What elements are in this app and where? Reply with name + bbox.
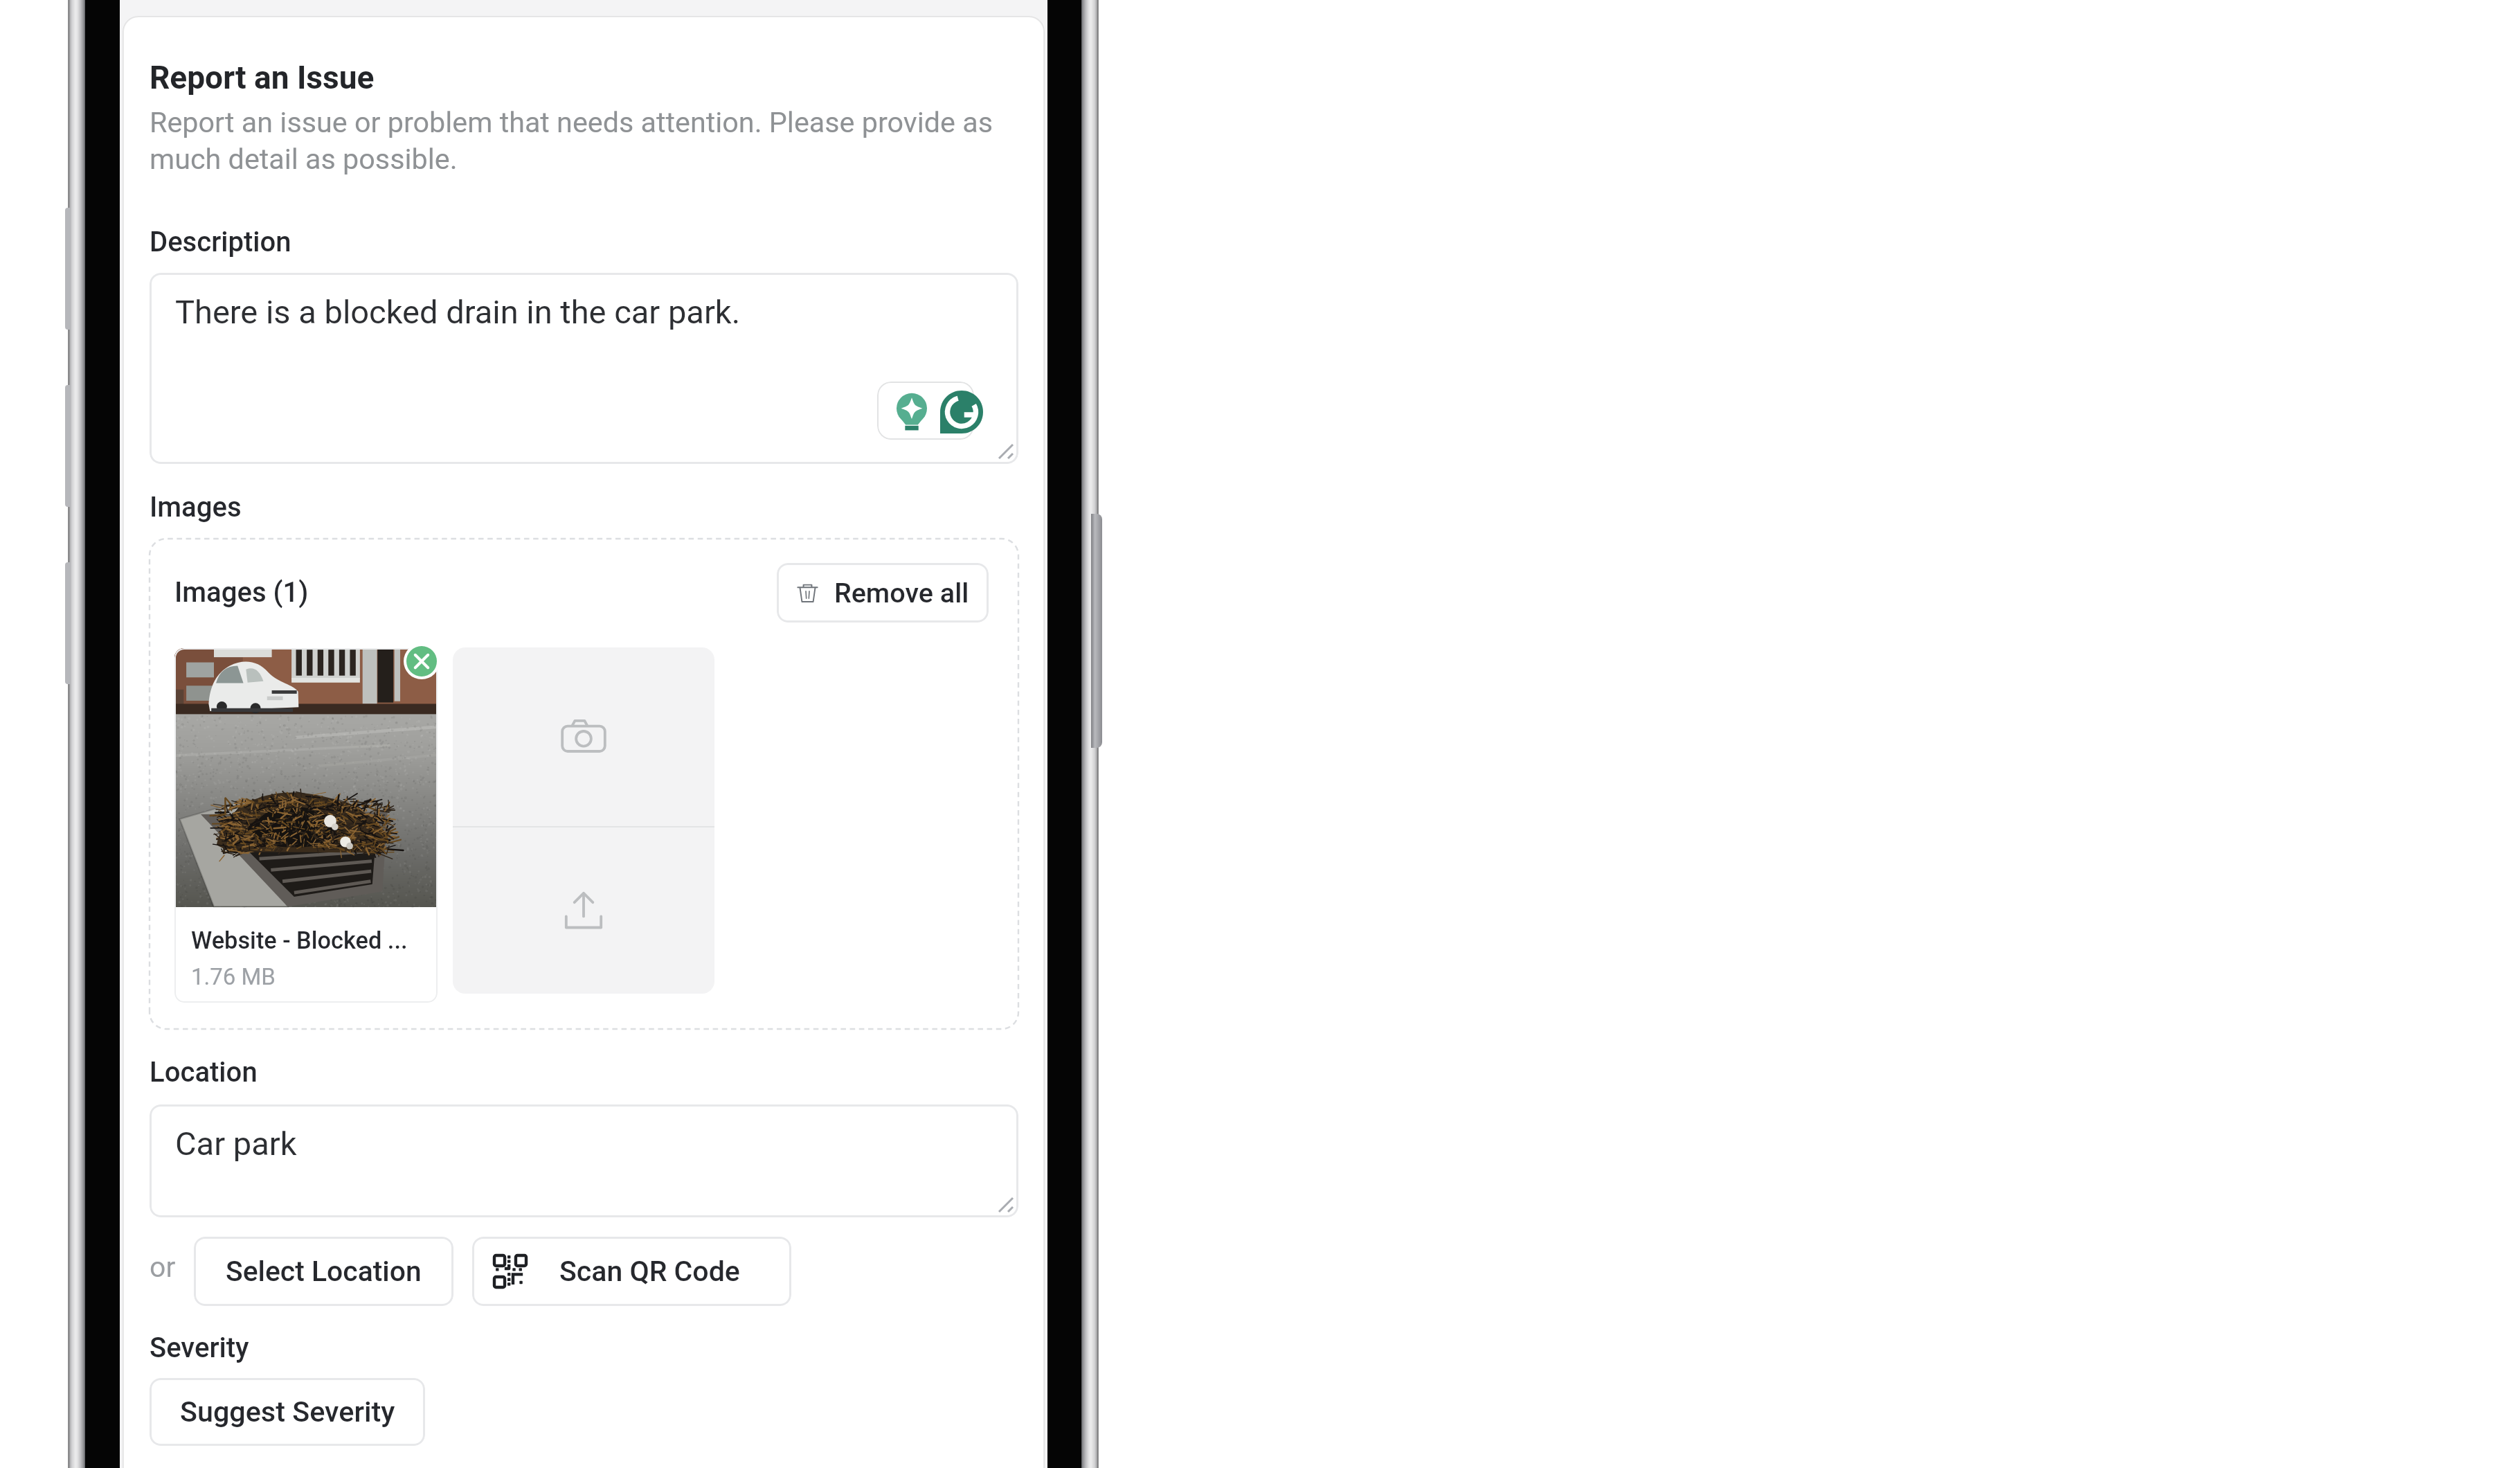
button[interactable]: Remove image [406,646,437,677]
button[interactable]: Grammarly assistant [877,382,974,440]
button[interactable]: Scan QR Code [472,1237,791,1306]
button[interactable]: Car park [150,1104,1018,1217]
staticText: Website - Blocked ... [191,927,408,954]
button[interactable]: Take photo [453,647,714,826]
staticText: Select Location [226,1255,422,1288]
other: Power button [1091,514,1102,748]
button[interactable]: Suggest Severity [150,1378,425,1446]
staticText: Report an Issue [150,59,375,96]
staticText: Images (1) [174,576,309,609]
button[interactable]: Select Location [194,1237,453,1306]
staticText: Remove all [834,577,969,609]
button[interactable]: There is a blocked drain in the car park… [150,273,1018,464]
button[interactable]: Website - Blocked drain image [174,648,438,1003]
button[interactable]: Upload image [453,827,714,994]
staticText: or [150,1251,176,1284]
staticText: Car park [175,1125,297,1163]
staticText: Images [150,491,242,523]
staticText: Description [150,226,291,258]
staticText: Severity [150,1332,249,1364]
staticText: Scan QR Code [559,1255,740,1288]
staticText: Report an issue or problem that needs at… [150,106,1012,176]
button[interactable]: Remove all [777,563,989,623]
staticText: There is a blocked drain in the car park… [175,293,741,331]
staticText: 1.76 MB [191,963,276,990]
staticText: Suggest Severity [180,1395,395,1429]
staticText: Location [150,1056,258,1089]
